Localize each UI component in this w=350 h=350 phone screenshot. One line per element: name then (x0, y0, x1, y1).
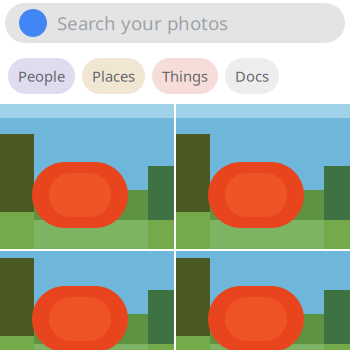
staticText: Places (92, 66, 135, 86)
staticText: Docs (235, 66, 269, 86)
button[interactable]: Places (82, 58, 145, 94)
button[interactable]: People (8, 58, 75, 94)
staticText: Search your photos (57, 11, 228, 35)
button[interactable]: Search your photos (5, 3, 345, 43)
button[interactable]: Things (152, 58, 218, 94)
staticText: People (18, 66, 65, 86)
staticText: Things (162, 66, 208, 86)
button[interactable]: Docs (225, 58, 279, 94)
